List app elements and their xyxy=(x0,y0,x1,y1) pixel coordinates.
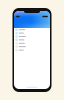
button[interactable] xyxy=(14,35,50,38)
button[interactable] xyxy=(14,42,50,45)
button[interactable] xyxy=(14,28,50,31)
button[interactable] xyxy=(14,48,50,52)
button[interactable] xyxy=(14,38,50,42)
button[interactable] xyxy=(14,31,50,35)
button[interactable] xyxy=(14,45,50,48)
